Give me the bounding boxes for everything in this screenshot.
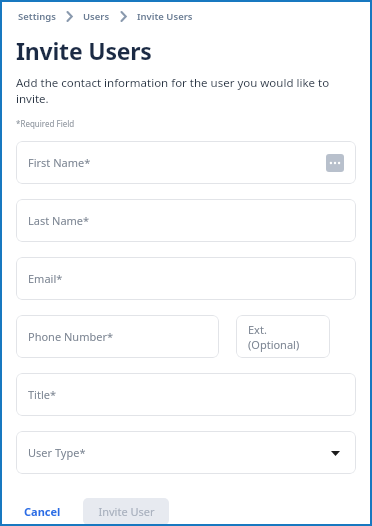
button[interactable]: Ext. (Optional) <box>236 315 330 358</box>
button[interactable]: Last Name* <box>16 199 356 242</box>
button[interactable]: Email* <box>16 257 356 300</box>
staticText: Users <box>83 10 110 23</box>
staticText: Ext. (Optional) <box>248 322 318 352</box>
staticText: Title* <box>28 387 57 402</box>
button[interactable]: Open user type dropdown <box>326 444 344 462</box>
button[interactable]: Users <box>81 8 112 25</box>
button[interactable]: Invite User <box>83 498 169 525</box>
button[interactable]: Invite Users <box>135 8 195 25</box>
staticText: Cancel <box>24 504 61 519</box>
button[interactable]: User Type* <box>16 431 356 474</box>
staticText: First Name* <box>28 155 91 170</box>
staticText: Invite Users <box>137 10 193 23</box>
staticText: Email* <box>28 271 63 286</box>
button[interactable]: First Name* <box>16 141 356 184</box>
button[interactable]: Phone Number* <box>16 315 219 358</box>
staticText: Invite Users <box>16 35 152 66</box>
button[interactable]: Cancel <box>16 498 69 525</box>
button[interactable]: More options <box>326 154 344 172</box>
staticText: Phone Number* <box>28 329 113 344</box>
staticText: Last Name* <box>28 213 90 228</box>
staticText: *Required Field <box>16 118 75 129</box>
staticText: User Type* <box>28 445 86 460</box>
staticText: Invite User <box>98 504 155 519</box>
staticText: Add the contact information for the user… <box>16 75 356 107</box>
button[interactable]: Settings <box>16 8 58 25</box>
staticText: Settings <box>18 10 56 23</box>
button[interactable]: Title* <box>16 373 356 416</box>
